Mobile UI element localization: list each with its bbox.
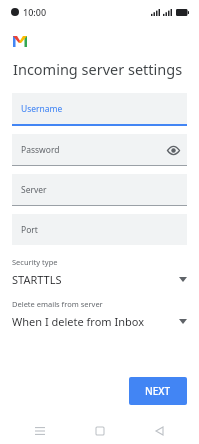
button[interactable]: Port xyxy=(12,214,187,245)
staticText: NEXT xyxy=(145,384,171,398)
staticText: Password xyxy=(21,144,60,156)
staticText: When I delete from Inbox xyxy=(12,314,144,329)
staticText: Security type xyxy=(12,257,58,267)
button[interactable]: Delete emails from server xyxy=(0,299,199,329)
staticText: 10:00 xyxy=(23,6,47,18)
staticText: STARTTLS xyxy=(12,272,62,287)
button[interactable]: Server xyxy=(12,174,187,206)
button[interactable]: Recent apps xyxy=(30,421,50,441)
button[interactable]: Show password xyxy=(165,142,181,158)
staticText: Incoming server settings xyxy=(13,59,183,79)
staticText: Delete emails from server xyxy=(12,299,103,309)
button[interactable]: Security type xyxy=(0,257,199,287)
staticText: Username xyxy=(21,103,63,115)
button[interactable]: Home xyxy=(90,421,110,441)
button[interactable]: Username xyxy=(12,93,187,126)
staticText: Server xyxy=(21,184,47,196)
button[interactable]: Password xyxy=(12,134,187,166)
staticText: Port xyxy=(21,224,38,236)
button[interactable]: Back xyxy=(149,421,169,441)
button[interactable]: NEXT xyxy=(129,377,187,405)
